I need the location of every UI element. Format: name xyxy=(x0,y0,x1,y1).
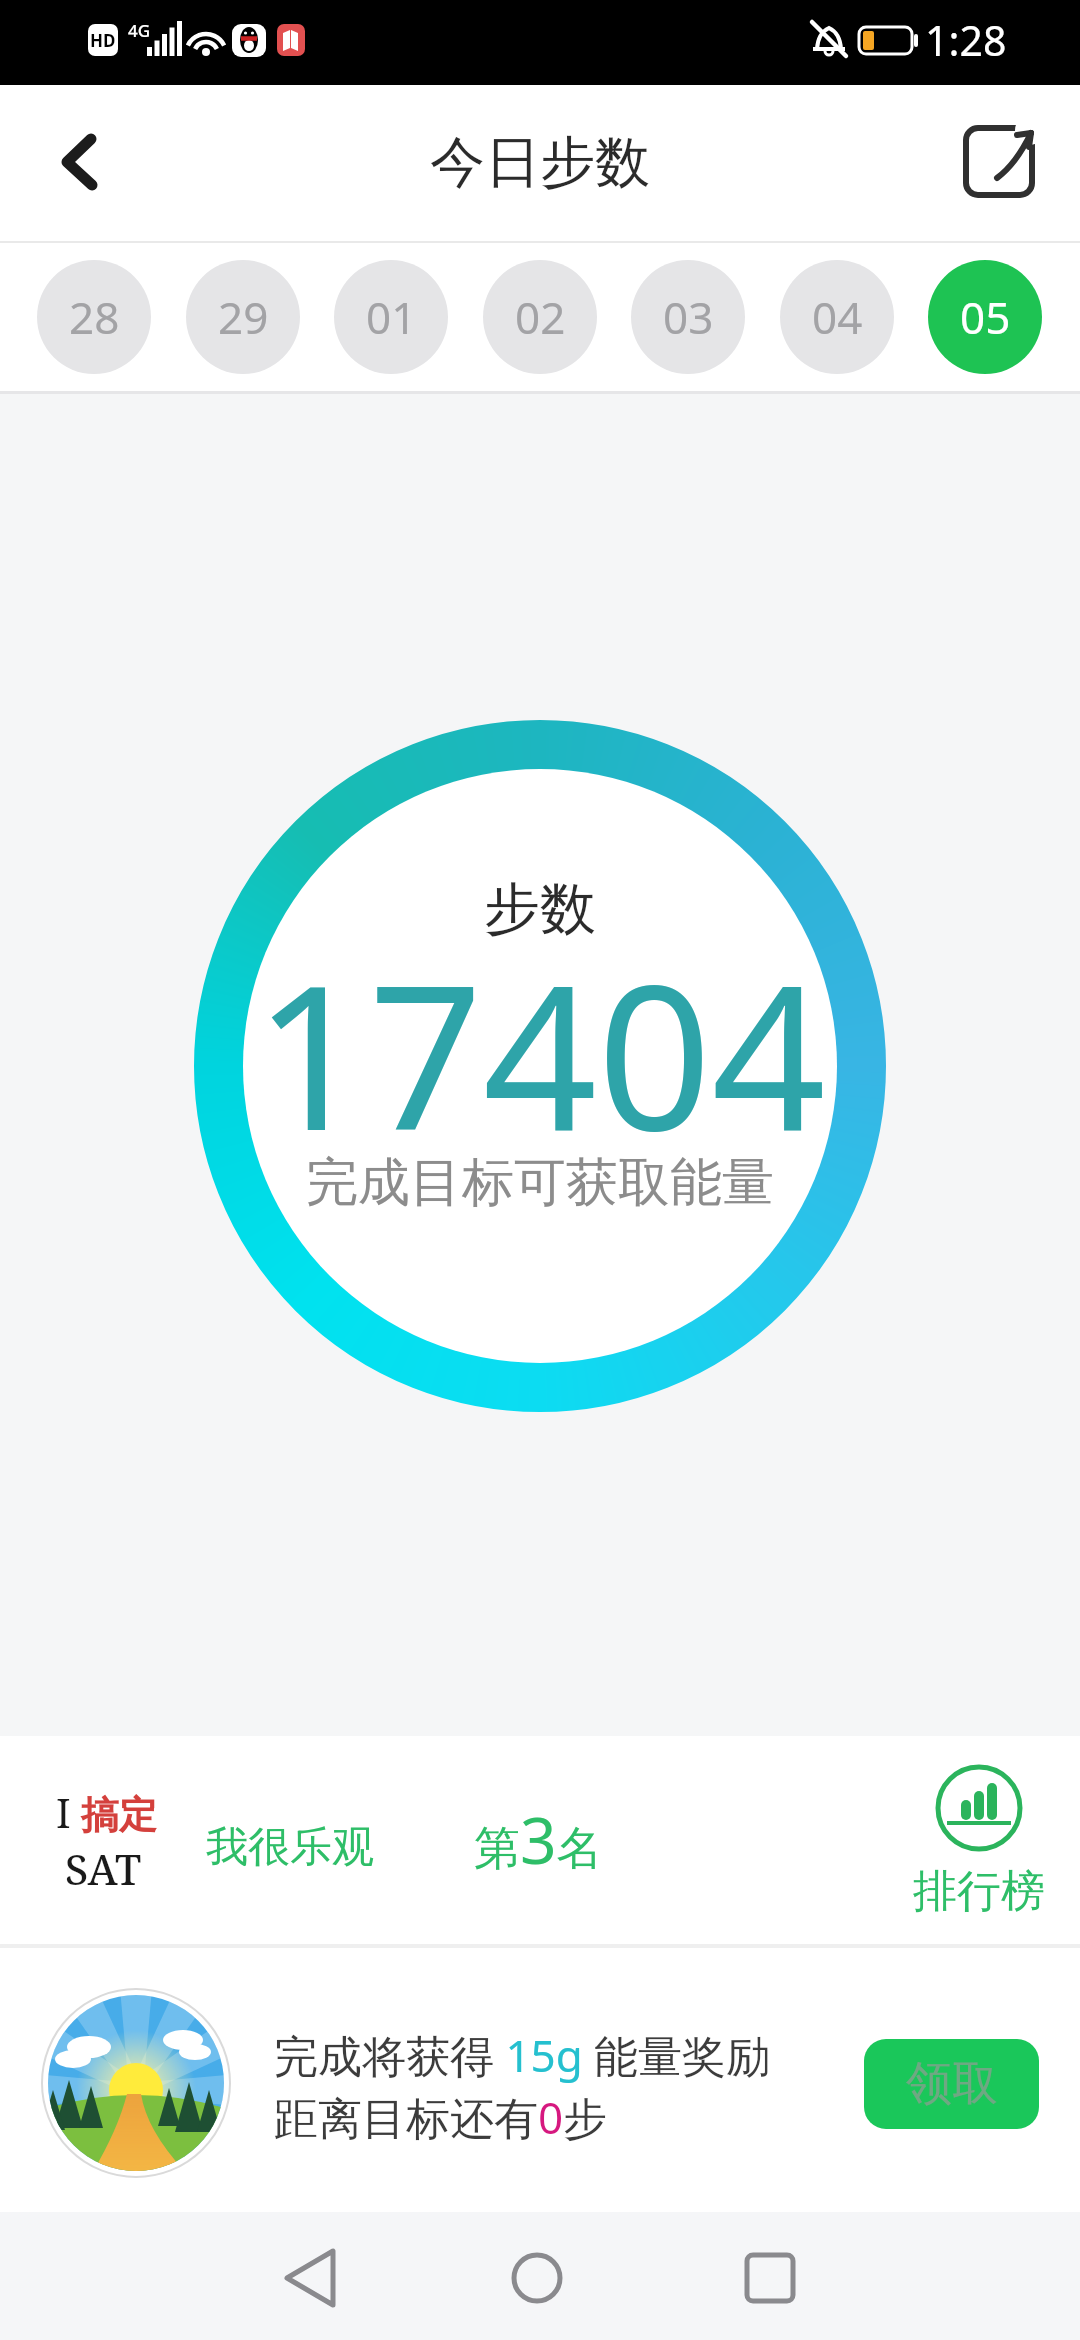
button[interactable] xyxy=(477,2212,597,2340)
button[interactable] xyxy=(250,2212,370,2340)
button[interactable]: 04 xyxy=(780,260,894,374)
button[interactable]: 05 xyxy=(928,260,1042,374)
staticText: 04 xyxy=(812,287,863,347)
staticText: 29 xyxy=(218,287,269,347)
button[interactable] xyxy=(0,1948,1080,2212)
staticText: HD xyxy=(90,29,116,52)
staticText: 01 xyxy=(366,287,417,347)
staticText: 02 xyxy=(515,287,566,347)
button[interactable] xyxy=(956,118,1046,208)
staticText: 1:28 xyxy=(925,12,1007,68)
staticText: 28 xyxy=(69,287,120,347)
button[interactable] xyxy=(20,105,130,220)
staticText: 步数 xyxy=(484,874,596,945)
staticText: 05 xyxy=(960,287,1011,347)
staticText: 完成将获得 15g 能量奖励 xyxy=(274,2025,771,2085)
staticText: SAT xyxy=(65,1840,142,1897)
button[interactable]: 领取 xyxy=(864,2039,1039,2129)
staticText: 领取 xyxy=(906,2055,998,2113)
staticText: 完成目标可获取能量 xyxy=(306,1150,774,1216)
staticText: I 搞定 xyxy=(56,1785,158,1839)
button[interactable] xyxy=(0,1736,1080,1944)
button[interactable]: 28 xyxy=(37,260,151,374)
staticText: 4G xyxy=(128,19,151,42)
staticText: 我很乐观 xyxy=(206,1821,374,1874)
staticText: 第3名 xyxy=(474,1796,603,1883)
staticText: 距离目标还有0步 xyxy=(274,2087,608,2147)
button[interactable]: 02 xyxy=(483,260,597,374)
staticText: 17404 xyxy=(254,916,827,1188)
button[interactable]: 01 xyxy=(334,260,448,374)
staticText: 排行榜 xyxy=(913,1864,1045,1919)
button[interactable] xyxy=(919,1763,1039,1933)
button[interactable] xyxy=(710,2212,830,2340)
button[interactable]: 29 xyxy=(186,260,300,374)
staticText: 03 xyxy=(663,287,714,347)
button[interactable]: 03 xyxy=(631,260,745,374)
staticText: 今日步数 xyxy=(430,128,650,197)
